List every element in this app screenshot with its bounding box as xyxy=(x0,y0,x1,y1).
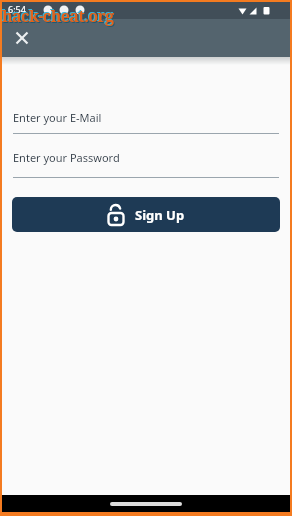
button[interactable]: Enter your E-Mail xyxy=(13,110,292,125)
staticText: hack-cheat.org xyxy=(1,4,113,26)
button[interactable]: Enter your Password xyxy=(13,150,292,165)
staticText: hack-cheat.org xyxy=(3,6,115,28)
button[interactable] xyxy=(0,495,292,512)
button[interactable]: Sign Up xyxy=(12,197,280,232)
button[interactable] xyxy=(8,24,36,52)
staticText: hack-cheat.org xyxy=(2,5,114,27)
staticText: 6:54 xyxy=(8,3,26,15)
staticText: Sign Up xyxy=(135,206,185,224)
staticText: Enter your Password xyxy=(13,150,120,165)
staticText: Enter your E-Mail xyxy=(13,110,102,125)
